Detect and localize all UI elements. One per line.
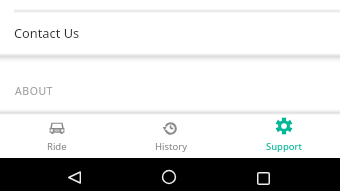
button[interactable]: Ride: [0, 112, 114, 153]
button[interactable]: Recents: [257, 172, 270, 185]
button[interactable]: Support: [227, 112, 340, 153]
staticText: Support: [266, 140, 302, 153]
staticText: History: [155, 140, 187, 153]
button[interactable]: Back: [68, 171, 81, 184]
staticText: Ride: [47, 140, 67, 153]
button[interactable]: Contact Us: [0, 10, 340, 54]
staticText: ABOUT: [15, 84, 53, 98]
staticText: Contact Us: [14, 24, 80, 41]
button[interactable]: History: [114, 112, 227, 153]
button[interactable]: Home: [162, 170, 176, 184]
